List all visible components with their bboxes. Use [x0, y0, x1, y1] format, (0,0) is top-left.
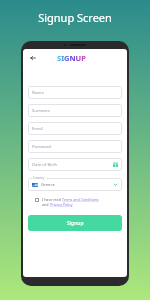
button[interactable]: I have read	[28, 197, 122, 207]
button[interactable]: Privacy Policy	[50, 202, 73, 207]
button[interactable]: Greece	[28, 178, 122, 191]
staticText: Signup Screen	[38, 10, 112, 25]
button[interactable]: Password	[28, 140, 122, 153]
staticText: Greece	[41, 182, 55, 188]
staticText: Password	[32, 144, 51, 150]
staticText: Date of Birth	[32, 162, 58, 168]
button[interactable]: Email	[28, 122, 122, 135]
staticText: Name	[32, 90, 44, 96]
button[interactable]: Back	[28, 53, 38, 63]
staticText: SIGNUP	[57, 53, 86, 63]
staticText: Country	[33, 176, 45, 180]
button[interactable]: Name	[28, 86, 122, 99]
button[interactable]: Signup	[28, 215, 122, 231]
staticText: and	[42, 202, 50, 207]
staticText: Email	[32, 126, 43, 132]
button[interactable]: SIGNUP	[57, 53, 86, 63]
button[interactable]: Date of Birth	[28, 158, 122, 171]
button[interactable]: Surname	[28, 104, 122, 117]
staticText: Surname	[32, 108, 50, 114]
staticText: Signup	[67, 220, 84, 227]
button[interactable]: Terms and Conditions	[62, 197, 99, 202]
staticText: I have read	[42, 197, 62, 202]
